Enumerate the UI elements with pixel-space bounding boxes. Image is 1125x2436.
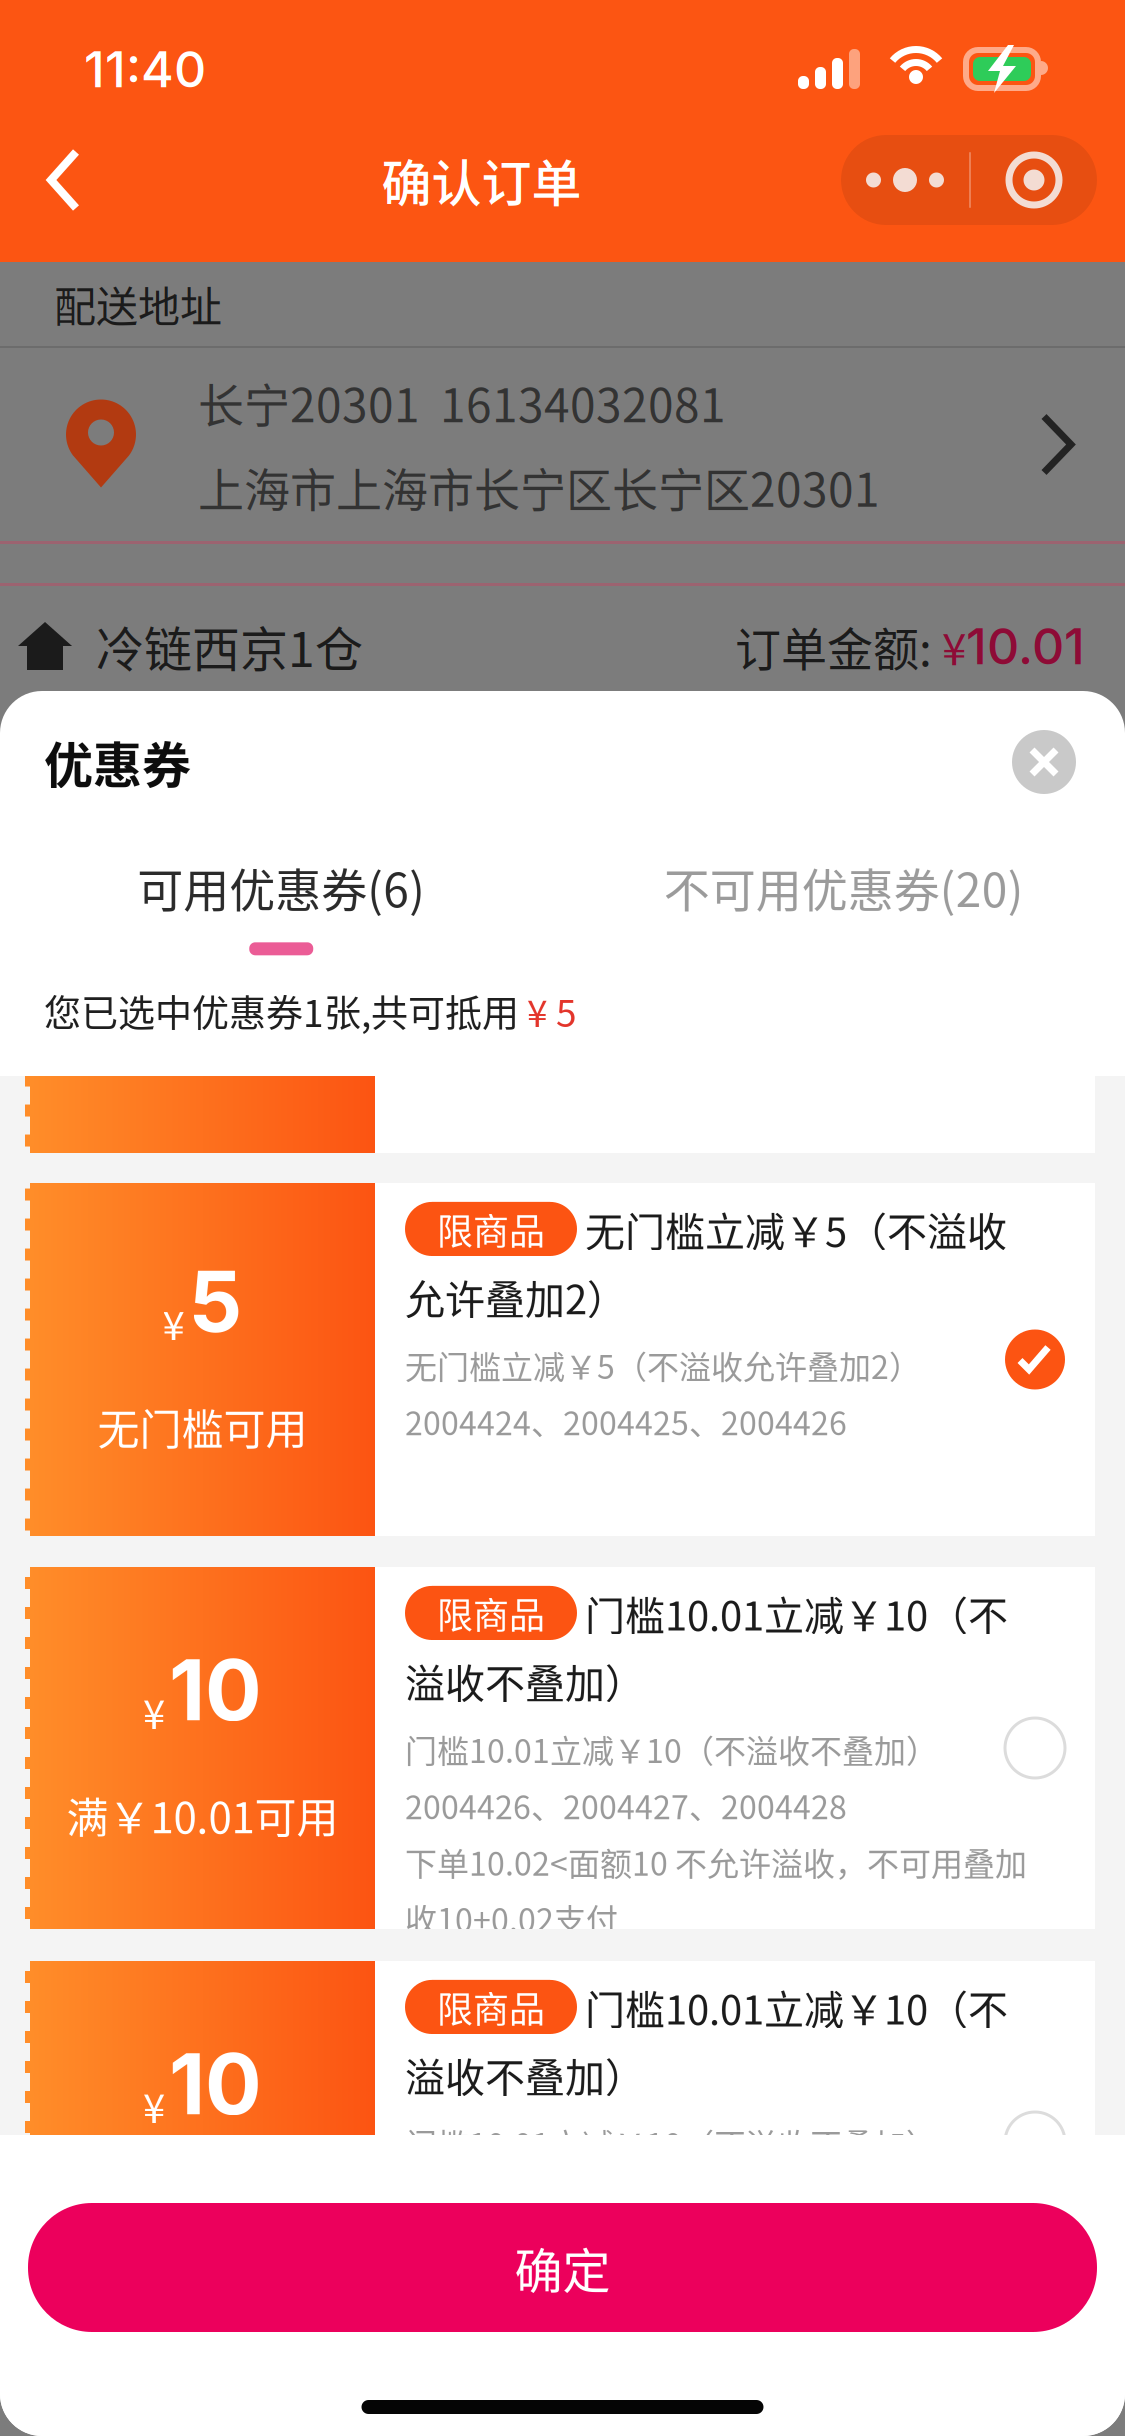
staticText: 无门槛立减￥5（不溢收允许叠加2） bbox=[405, 1342, 921, 1388]
staticText: 2004424、2004425、2004426 bbox=[405, 1398, 847, 1444]
staticText: 11:40 bbox=[84, 39, 206, 99]
staticText: 确认订单 bbox=[381, 144, 581, 216]
staticText: 2004424、2004425、2004426 bbox=[405, 1013, 847, 1059]
staticText: 限商品 bbox=[437, 1587, 545, 1639]
staticText: ¥ bbox=[932, 614, 966, 678]
staticText: 无门槛可用 bbox=[97, 1396, 307, 1457]
staticText: 无门槛可用 bbox=[97, 1012, 307, 1073]
staticText: 门槛10.01立减￥10（不 bbox=[585, 1978, 1008, 2036]
staticText: 5 bbox=[188, 866, 242, 968]
button[interactable]: ¥ bbox=[30, 798, 1095, 1153]
staticText: 门槛10.01立减￥10（不溢收不叠加） bbox=[405, 2120, 938, 2166]
staticText: 满￥10.01可用 bbox=[66, 2178, 338, 2239]
staticText: 可用优惠券(6) bbox=[137, 854, 425, 920]
staticText: 10.01 bbox=[966, 616, 1085, 676]
staticText: 溢收不叠加） bbox=[405, 2046, 645, 2104]
staticText: 门槛10.01立减￥10（不 bbox=[585, 1584, 1008, 1642]
staticText: ¥ bbox=[162, 910, 184, 968]
staticText: ¥ bbox=[143, 1682, 165, 1740]
button[interactable]: ¥ bbox=[30, 1567, 1095, 1929]
staticText: 配送地址 bbox=[54, 274, 222, 334]
staticText: 门槛10.01立减￥10（不溢收不叠加） bbox=[405, 1726, 938, 1772]
staticText: 无门槛立减￥5（不溢收允许叠加2） bbox=[405, 957, 921, 1003]
button[interactable]: 关闭 bbox=[996, 714, 1092, 810]
button[interactable]: 确定 bbox=[28, 2203, 1097, 2332]
staticText: 10 bbox=[169, 2033, 262, 2134]
staticText: 订单金额: bbox=[735, 613, 932, 679]
staticText: 2004426、2004427、2004428 bbox=[405, 1782, 847, 1828]
staticText: 您已选中优惠券1张,共可抵用 bbox=[44, 984, 519, 1038]
staticText: 2004426、2004427、2004428 bbox=[405, 2176, 847, 2222]
button[interactable]: 返回 bbox=[0, 125, 122, 235]
staticText: 下单10.02<面额10 不允许溢收，不可用叠加 bbox=[405, 1838, 1027, 1885]
staticText: 5 bbox=[188, 1250, 242, 1352]
staticText: 允许叠加2） bbox=[405, 883, 627, 941]
staticText: 限商品 bbox=[437, 1981, 545, 2033]
staticText: ¥ 5 bbox=[519, 984, 577, 1038]
staticText: 溢收不叠加） bbox=[405, 1652, 645, 1710]
button[interactable]: 更多 bbox=[841, 135, 1097, 225]
staticText: 确定 bbox=[514, 2233, 610, 2302]
button[interactable]: ¥ bbox=[30, 1961, 1095, 2323]
staticText: 上海市上海市长宁区长宁区20301 bbox=[198, 453, 880, 520]
staticText: 限商品 bbox=[437, 1203, 545, 1255]
staticText: 冷链西京1仓 bbox=[96, 611, 363, 681]
button[interactable]: 不可用优惠券(20) bbox=[562, 842, 1125, 967]
staticText: ¥ bbox=[162, 1294, 184, 1352]
staticText: 10 bbox=[169, 1639, 262, 1740]
staticText: 长宁20301 16134032081 bbox=[198, 369, 726, 435]
button[interactable]: 可用优惠券(6) bbox=[0, 842, 562, 967]
staticText: 不可用优惠券(20) bbox=[664, 854, 1024, 920]
staticText: 收10+0.02支付 bbox=[405, 1895, 618, 1941]
button[interactable]: ¥ bbox=[30, 1183, 1095, 1536]
staticText: 无门槛立减￥5（不溢收 bbox=[585, 1200, 1007, 1258]
staticText: 允许叠加2） bbox=[405, 1268, 627, 1326]
staticText: 无门槛立减￥5（不溢收 bbox=[585, 815, 1007, 873]
staticText: 满￥10.01可用 bbox=[66, 1784, 338, 1845]
staticText: 优惠券 bbox=[44, 726, 191, 797]
staticText: ¥ bbox=[143, 2076, 165, 2134]
